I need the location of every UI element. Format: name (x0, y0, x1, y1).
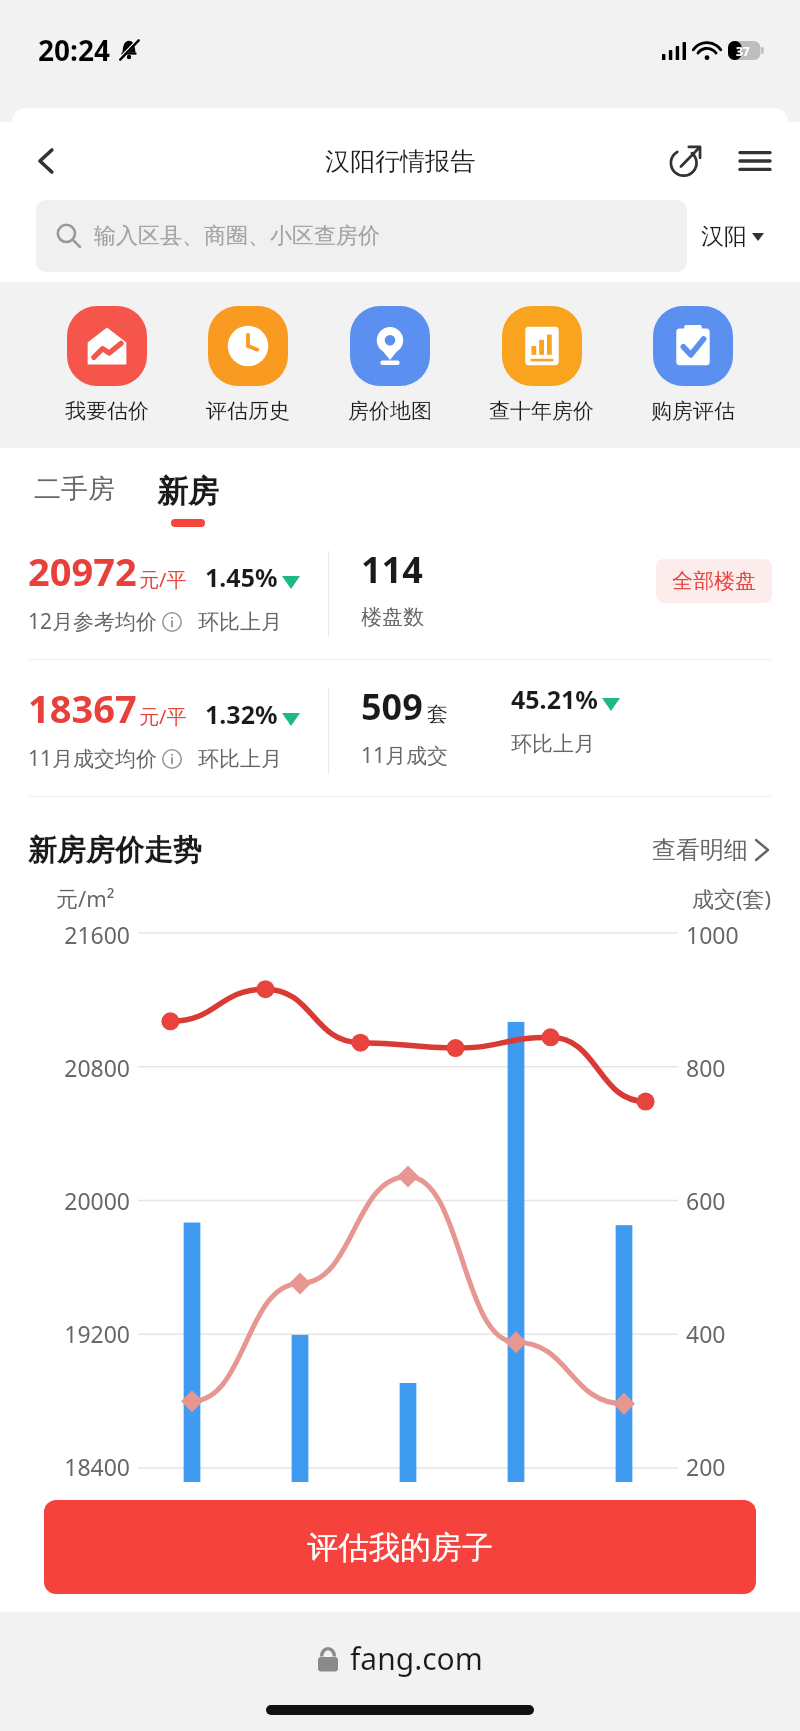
staticText: 18367 (28, 682, 137, 734)
staticText: 环比上月 (511, 731, 595, 757)
staticText: 成交(套) (692, 883, 772, 913)
staticText: 环比上月 (198, 746, 282, 772)
staticText: 18400 (26, 1451, 130, 1482)
button[interactable]: 全部楼盘 (656, 559, 772, 603)
staticText: 114 (361, 545, 423, 594)
button[interactable]: 评估我的房子 (44, 1500, 756, 1594)
button[interactable]: Menu (728, 134, 782, 188)
staticText: 12月参考均价 (28, 607, 158, 636)
button[interactable]: 查十年房价 (485, 304, 598, 426)
staticText: 20:24 (38, 31, 110, 69)
staticText: 购房评估 (651, 398, 735, 424)
button[interactable]: 输入区县、商圈、小区查房价 (36, 200, 687, 272)
staticText: 1000 (686, 919, 778, 950)
staticText: 1.32% (205, 697, 278, 731)
staticText: 21600 (26, 919, 130, 950)
staticText: 11月成交 (361, 741, 449, 770)
staticText: 楼盘数 (361, 604, 424, 630)
staticText: 37 (736, 43, 750, 59)
button[interactable]: Share (658, 134, 712, 188)
staticText: 输入区县、商圈、小区查房价 (94, 222, 380, 250)
button[interactable]: 房价地图 (344, 304, 436, 426)
staticText: 1.45% (205, 560, 278, 594)
staticText: 20972 (28, 545, 137, 597)
staticText: 200 (686, 1451, 778, 1482)
staticText: 800 (686, 1052, 778, 1083)
button[interactable]: 汉阳 (687, 214, 778, 259)
staticText: 查看明细 (652, 835, 748, 865)
staticText: 全部楼盘 (672, 568, 756, 594)
staticText: 19200 (26, 1318, 130, 1349)
staticText: 600 (686, 1185, 778, 1216)
staticText: 20000 (26, 1185, 130, 1216)
staticText: 400 (686, 1318, 778, 1349)
staticText: 元/平 (139, 703, 187, 730)
staticText: 509 (361, 682, 423, 731)
button[interactable]: 二手房 (34, 472, 121, 516)
staticText: 新房 (157, 472, 219, 511)
button[interactable]: 我要估价 (61, 304, 153, 426)
staticText: 汉阳 (701, 222, 747, 251)
staticText: 45.21% (511, 682, 598, 716)
staticText: 二手房 (34, 472, 115, 506)
button[interactable]: 查看明细 (646, 829, 774, 871)
staticText: 新房房价走势 (28, 832, 202, 869)
staticText: 汉阳行情报告 (325, 146, 475, 177)
staticText: 查十年房价 (489, 398, 594, 424)
staticText: 评估历史 (206, 398, 290, 424)
staticText: 套 (427, 701, 448, 727)
staticText: 元/平 (139, 566, 187, 593)
button[interactable]: 新房 (157, 472, 219, 527)
staticText: 11月成交均价 (28, 744, 158, 773)
staticText: 20800 (26, 1052, 130, 1083)
staticText: 元/m² (56, 883, 115, 913)
staticText: 房价地图 (348, 398, 432, 424)
button[interactable]: 购房评估 (647, 304, 739, 426)
button[interactable]: 评估历史 (202, 304, 294, 426)
staticText: fang.com (350, 1638, 483, 1679)
staticText: 环比上月 (198, 609, 282, 635)
staticText: 我要估价 (65, 398, 149, 424)
staticText: 评估我的房子 (307, 1528, 493, 1567)
button[interactable]: Back (20, 134, 74, 188)
